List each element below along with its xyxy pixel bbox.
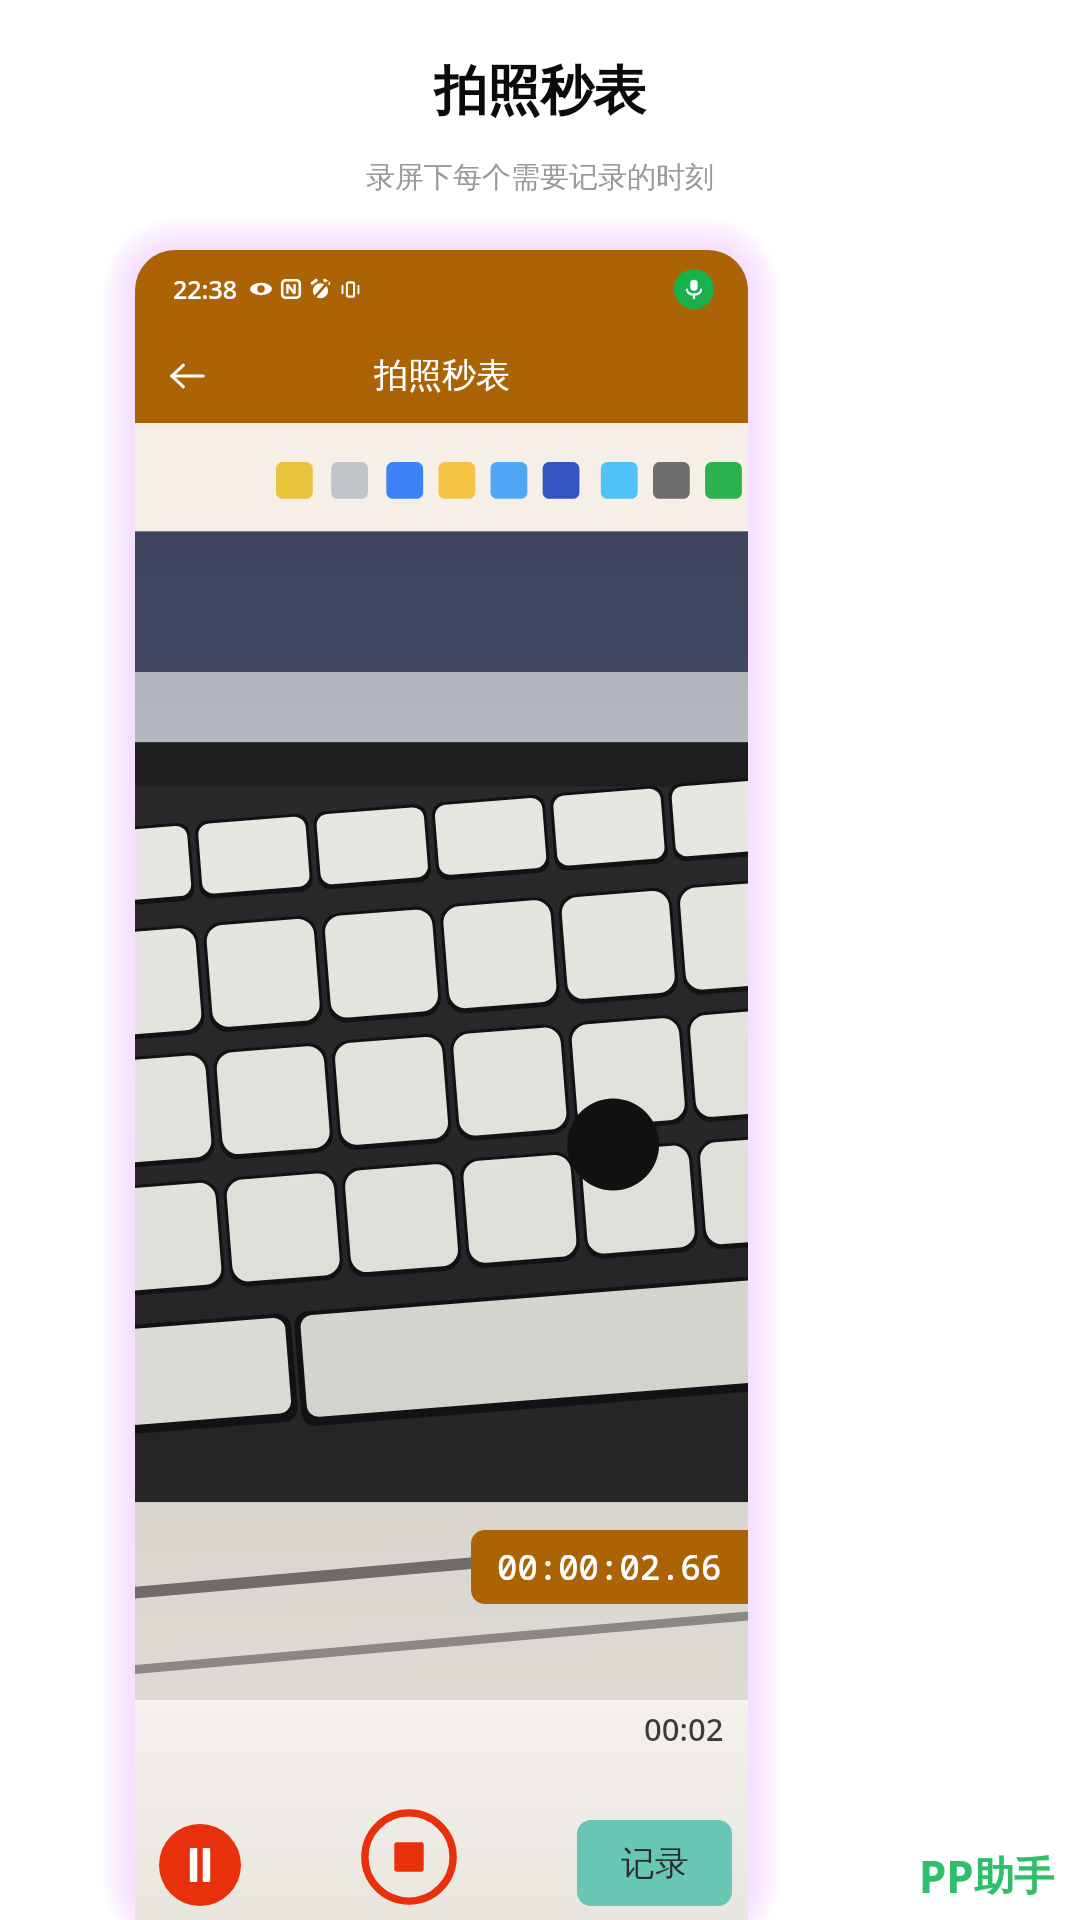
staticText: 00:00:02.66	[497, 1544, 722, 1590]
button[interactable]: 记录	[577, 1820, 732, 1906]
staticText: 00:02	[644, 1708, 724, 1750]
staticText: 拍照秒表	[374, 354, 510, 397]
button[interactable]: Microphone in use	[674, 269, 714, 309]
staticText: 录屏下每个需要记录的时刻	[366, 159, 714, 196]
staticText: 拍照秒表	[434, 58, 646, 125]
button[interactable]: 00:00:02.66	[497, 1544, 722, 1590]
button[interactable]: Stop	[360, 1808, 458, 1906]
button[interactable]: Pause	[159, 1824, 241, 1906]
staticText: 22:38	[173, 272, 238, 306]
staticText: 助手	[974, 1851, 1054, 1901]
button[interactable]: Back	[155, 344, 219, 408]
staticText: 记录	[621, 1842, 689, 1885]
staticText: PP	[919, 1846, 974, 1906]
